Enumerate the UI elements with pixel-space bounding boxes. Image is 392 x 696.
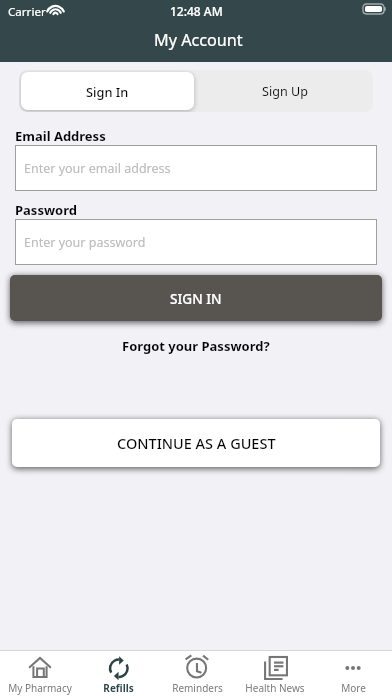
staticText: More bbox=[341, 681, 366, 695]
button[interactable]: SIGN IN bbox=[10, 275, 382, 321]
button[interactable]: More bbox=[314, 650, 392, 696]
staticText: Sign In bbox=[86, 83, 129, 100]
button[interactable]: My Pharmacy bbox=[0, 650, 79, 696]
staticText: Refills bbox=[103, 681, 134, 695]
button[interactable]: CONTINUE AS A GUEST bbox=[12, 419, 380, 467]
staticText: Carrier bbox=[8, 4, 46, 20]
button[interactable]: Sign In bbox=[21, 72, 194, 110]
staticText: CONTINUE AS A GUEST bbox=[117, 433, 276, 453]
button[interactable]: Health News bbox=[236, 650, 314, 696]
staticText: 12:48 AM bbox=[170, 3, 223, 19]
button[interactable]: Enter your email address bbox=[15, 145, 377, 191]
staticText: Enter your password bbox=[24, 234, 146, 251]
button[interactable]: Reminders bbox=[158, 650, 236, 696]
button[interactable]: Forgot your Password? bbox=[122, 337, 270, 355]
staticText: Password bbox=[15, 201, 77, 219]
button[interactable]: Sign Up bbox=[196, 70, 373, 112]
staticText: Reminders bbox=[172, 681, 223, 695]
staticText: Email Address bbox=[15, 127, 106, 145]
staticText: SIGN IN bbox=[170, 289, 222, 308]
staticText: My Account bbox=[154, 29, 243, 51]
staticText: Health News bbox=[245, 681, 305, 695]
staticText: Sign Up bbox=[262, 83, 308, 100]
button[interactable]: Enter your password bbox=[15, 219, 377, 265]
staticText: My Pharmacy bbox=[8, 681, 72, 695]
button[interactable]: Refills bbox=[79, 650, 158, 696]
staticText: Enter your email address bbox=[24, 160, 171, 177]
